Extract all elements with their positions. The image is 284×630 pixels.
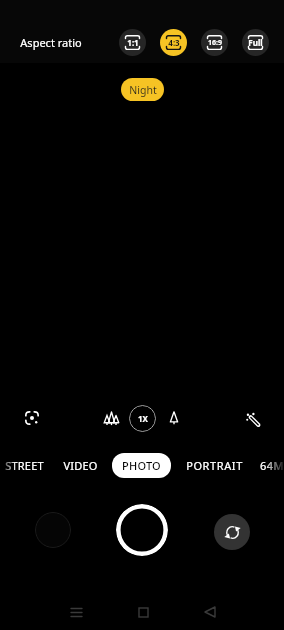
button[interactable]: PHOTO [112,453,171,478]
button[interactable]: Night [121,78,164,101]
button[interactable]: Home [126,595,160,629]
staticText: PHOTO [122,458,161,473]
button[interactable]: Ultra wide lens [97,404,125,432]
staticText: Full [248,37,263,48]
button[interactable]: VIDEO [53,452,108,479]
staticText: 1X [138,413,148,424]
staticText: STREET [5,458,44,473]
button[interactable]: Switch camera [214,514,250,550]
button[interactable]: STREET [0,452,53,479]
staticText: PORTRAIT [186,458,243,473]
button[interactable]: 1X [129,405,156,432]
button[interactable]: Full [242,29,269,56]
button[interactable]: Magic filters [238,404,266,432]
button[interactable]: 4:3 [160,29,187,56]
button[interactable]: 64M [252,452,284,479]
staticText: 4:3 [168,37,180,48]
button[interactable]: Gallery [35,512,71,548]
button[interactable]: PORTRAIT [177,452,252,479]
staticText: 64M [260,458,284,473]
staticText: 1:1 [127,37,139,48]
button[interactable]: 16:9 [201,29,228,56]
staticText: VIDEO [63,458,98,473]
button[interactable]: Back [193,595,227,629]
button[interactable]: Shutter [116,504,168,556]
staticText: Aspect ratio [20,35,82,50]
button[interactable]: Telephoto lens [160,404,188,432]
button[interactable]: 1:1 [119,29,146,56]
staticText: Night [129,83,157,97]
staticText: 16:9 [208,38,222,48]
button[interactable]: Google Lens [18,404,46,432]
button[interactable]: Recents [59,595,93,629]
